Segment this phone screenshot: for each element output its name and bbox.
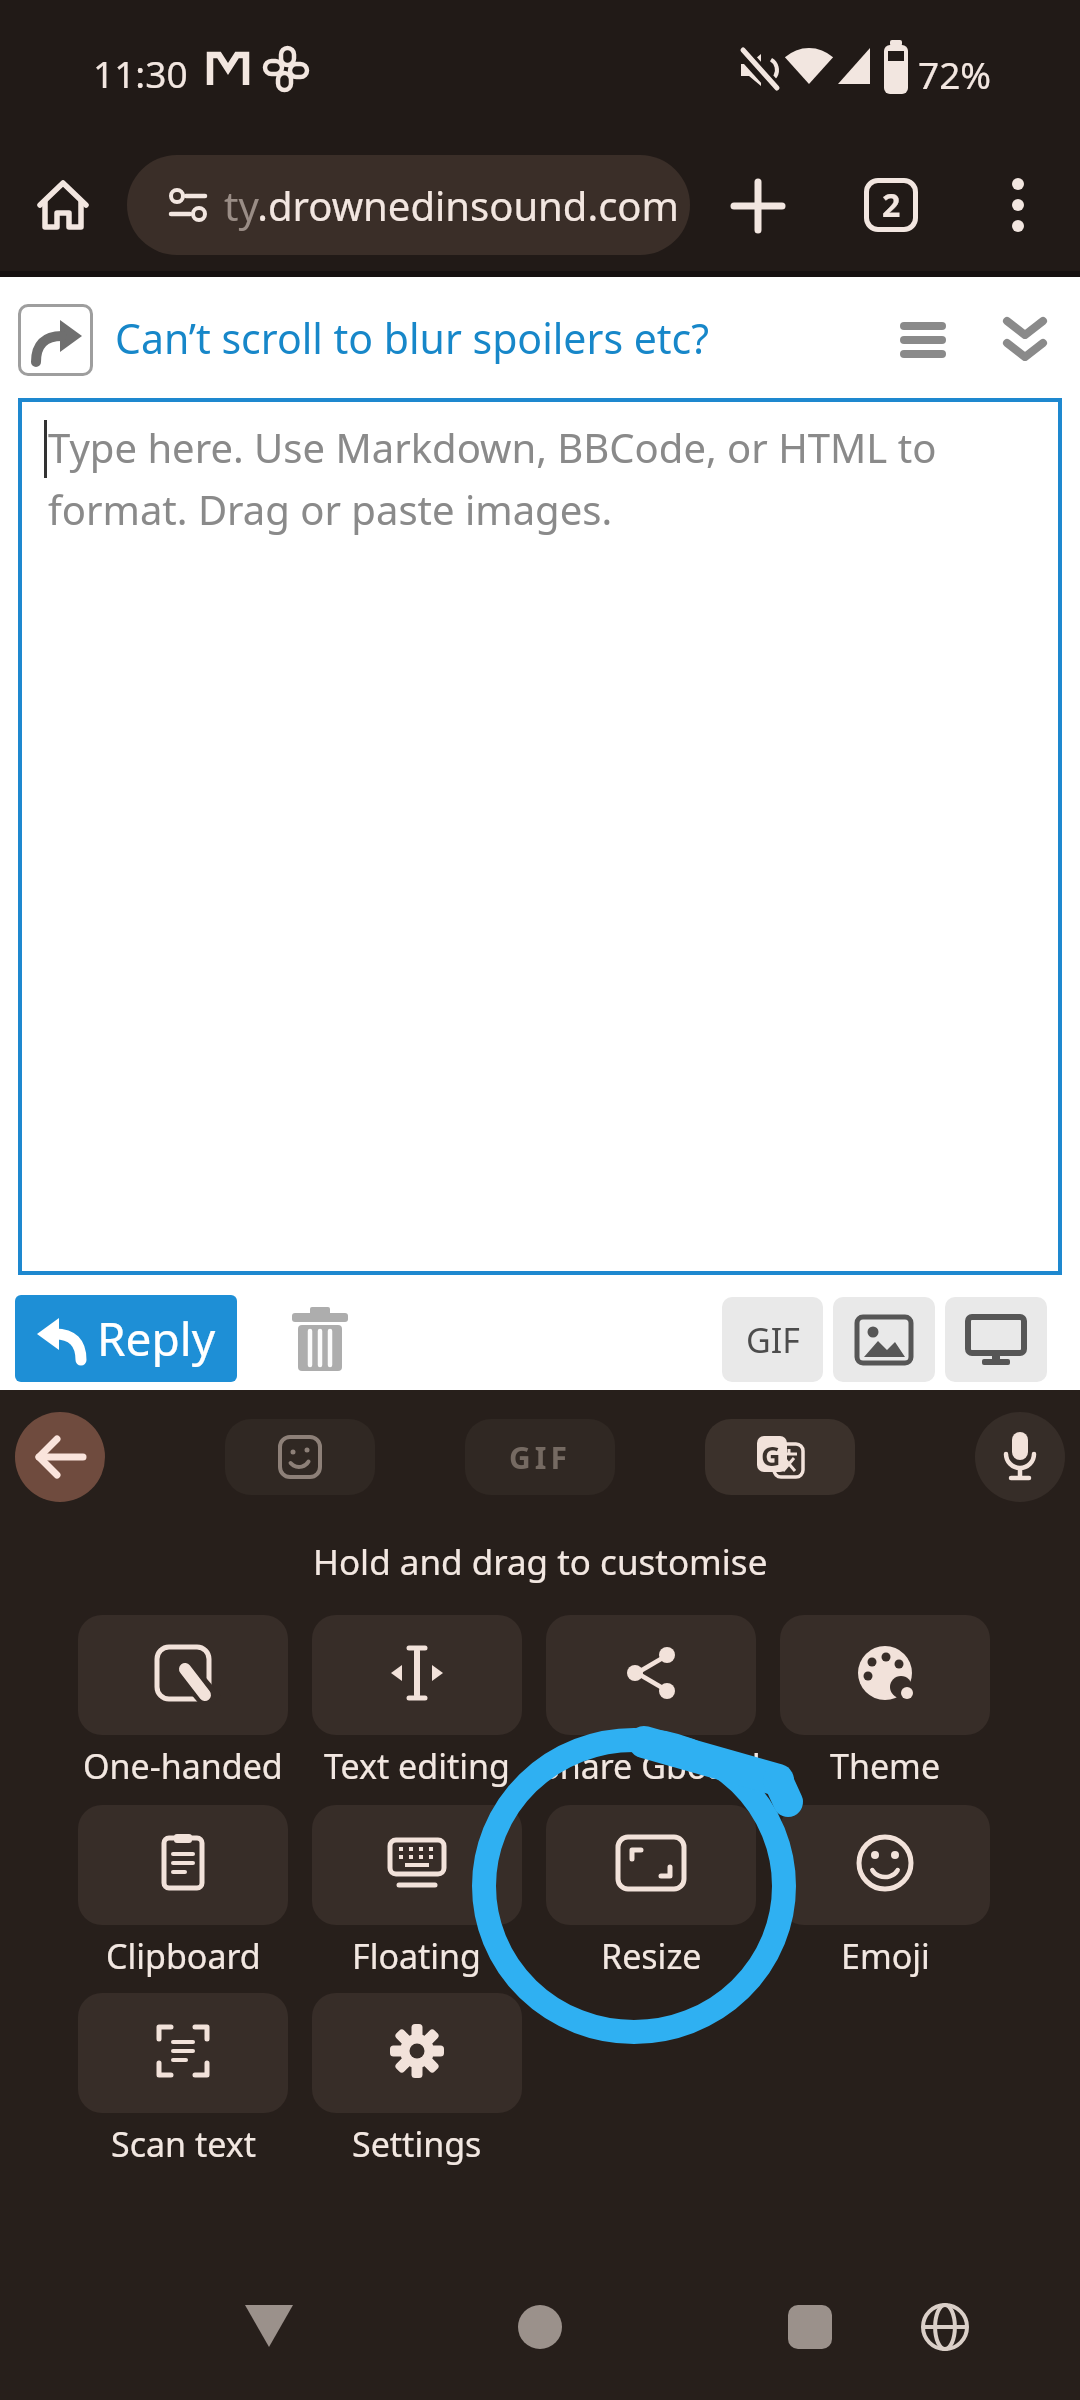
button[interactable] bbox=[975, 1412, 1065, 1502]
button[interactable] bbox=[993, 307, 1057, 371]
staticText: Scan text bbox=[111, 2121, 256, 2167]
button[interactable] bbox=[15, 1412, 105, 1502]
staticText: Resize bbox=[601, 1933, 702, 1979]
staticText: Settings bbox=[352, 2121, 482, 2167]
button[interactable] bbox=[280, 1297, 360, 1381]
staticText: Type here. Use Markdown, BBCode, or HTML… bbox=[48, 420, 937, 536]
button[interactable] bbox=[78, 1805, 288, 1925]
button[interactable] bbox=[726, 174, 790, 238]
staticText: Share Gboard bbox=[541, 1743, 761, 1789]
button[interactable]: ty.drownedinsound.com bbox=[127, 155, 690, 255]
staticText: Reply bbox=[97, 1307, 216, 1370]
staticText: GIF bbox=[509, 1437, 571, 1478]
button[interactable] bbox=[312, 1615, 522, 1735]
staticText: 72% bbox=[918, 49, 992, 99]
staticText: Clipboard bbox=[106, 1933, 261, 1979]
staticText: One-handed bbox=[83, 1743, 283, 1789]
button[interactable] bbox=[773, 2285, 847, 2359]
button[interactable] bbox=[546, 1615, 756, 1735]
button[interactable]: GIF bbox=[465, 1419, 615, 1495]
button[interactable] bbox=[990, 174, 1050, 234]
button[interactable] bbox=[312, 1993, 522, 2113]
button[interactable] bbox=[780, 1615, 990, 1735]
staticText: ty.drownedinsound.com bbox=[224, 178, 679, 232]
button[interactable] bbox=[945, 1297, 1047, 1382]
button[interactable]: G bbox=[705, 1419, 855, 1495]
staticText: GIF bbox=[746, 1317, 800, 1363]
button[interactable] bbox=[312, 1805, 522, 1925]
staticText: 2 bbox=[882, 183, 901, 227]
staticText: G bbox=[761, 1437, 781, 1474]
button[interactable] bbox=[890, 307, 954, 371]
button[interactable] bbox=[780, 1805, 990, 1925]
staticText: Emoji bbox=[841, 1933, 930, 1979]
button[interactable] bbox=[78, 1615, 288, 1735]
staticText: Floating bbox=[352, 1933, 482, 1979]
button[interactable] bbox=[833, 1297, 935, 1382]
button[interactable] bbox=[30, 175, 96, 237]
button[interactable] bbox=[225, 1419, 375, 1495]
button[interactable] bbox=[232, 2285, 306, 2359]
button[interactable] bbox=[908, 2285, 982, 2359]
button[interactable]: 2 bbox=[864, 178, 918, 232]
button[interactable] bbox=[18, 304, 93, 376]
button[interactable] bbox=[503, 2285, 577, 2359]
button[interactable] bbox=[78, 1993, 288, 2113]
button[interactable]: Reply bbox=[15, 1295, 237, 1382]
staticText: Theme bbox=[830, 1743, 941, 1789]
button[interactable]: GIF bbox=[722, 1297, 823, 1382]
staticText: Text editing bbox=[324, 1743, 510, 1789]
staticText: Hold and drag to customise bbox=[313, 1538, 768, 1586]
button[interactable] bbox=[546, 1805, 756, 1925]
staticText: 11:30 bbox=[93, 48, 188, 98]
button[interactable]: Can’t scroll to blur spoilers etc? bbox=[115, 310, 710, 366]
